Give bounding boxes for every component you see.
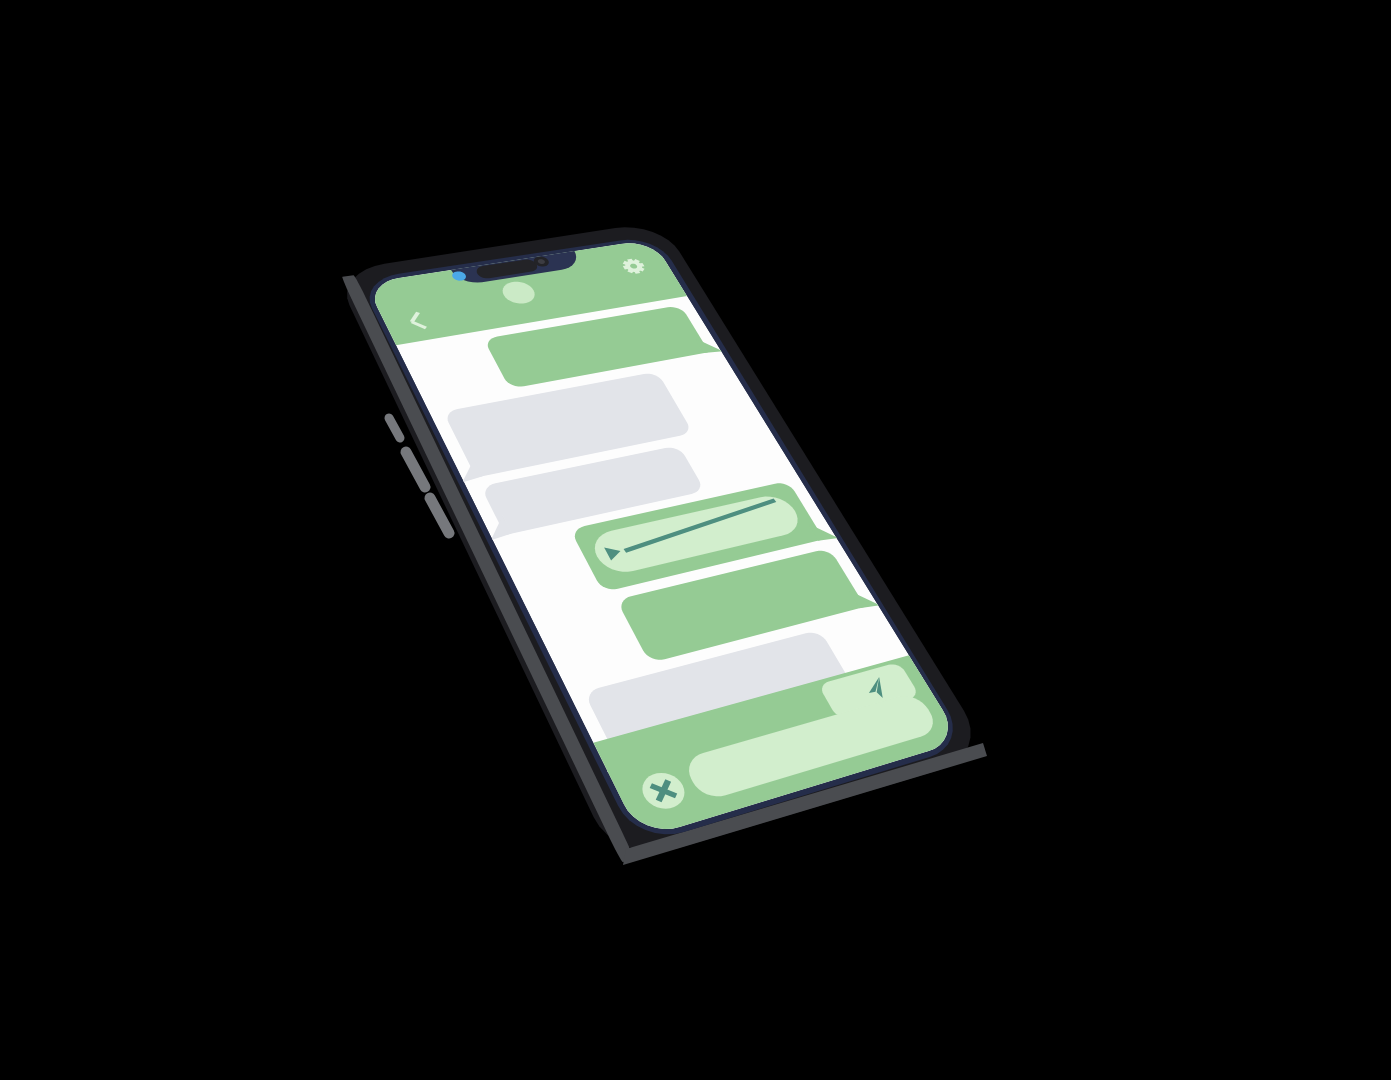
button[interactable]: Message input <box>716 738 952 820</box>
button[interactable]: Contact avatar <box>487 267 537 309</box>
button[interactable]: Play voice message <box>556 492 804 584</box>
button[interactable]: Add attachment <box>668 772 730 834</box>
button[interactable]: Send <box>888 688 962 748</box>
button[interactable]: Settings <box>592 237 640 281</box>
button[interactable]: Back <box>373 299 415 341</box>
